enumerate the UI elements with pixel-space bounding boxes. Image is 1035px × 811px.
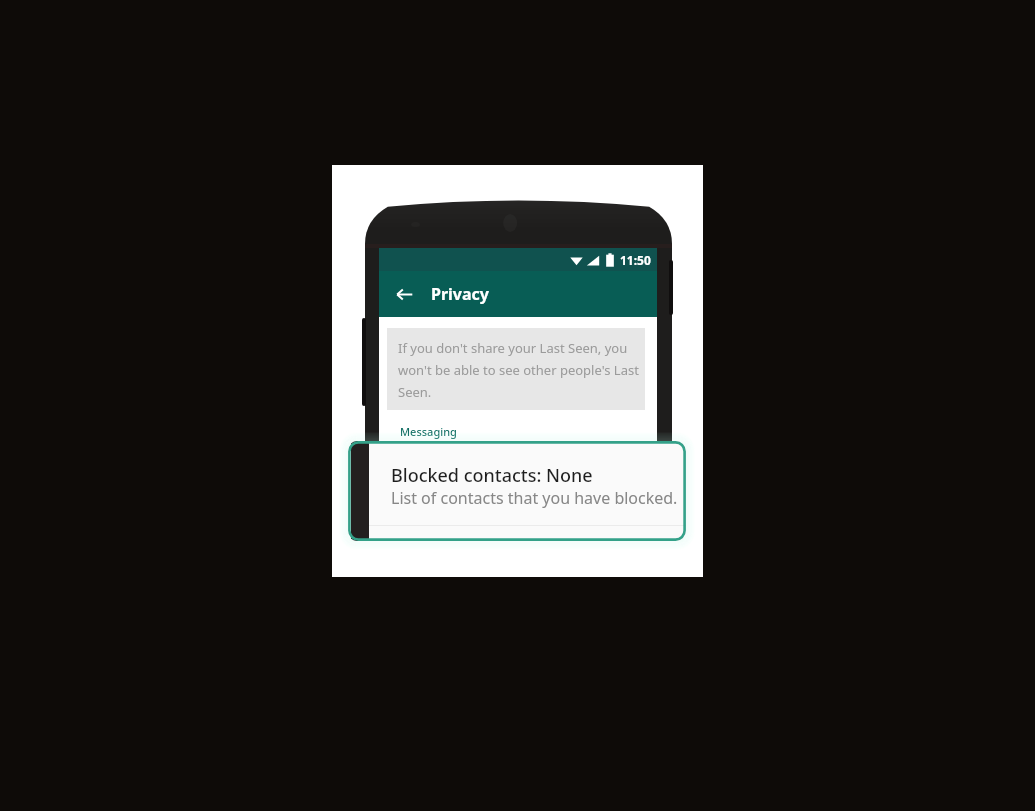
button[interactable]: Blocked contacts: None (348, 441, 686, 541)
staticText: Messaging (400, 424, 457, 439)
staticText: If you don't share your Last Seen, you w… (398, 339, 641, 401)
staticText: Privacy (431, 283, 489, 305)
staticText: 11:50 (620, 252, 651, 268)
staticText: Blocked contacts: None (391, 463, 593, 488)
button[interactable]: Messaging (400, 424, 457, 439)
button[interactable]: Navigate up (391, 281, 417, 307)
staticText: List of contacts that you have blocked. (391, 487, 678, 509)
